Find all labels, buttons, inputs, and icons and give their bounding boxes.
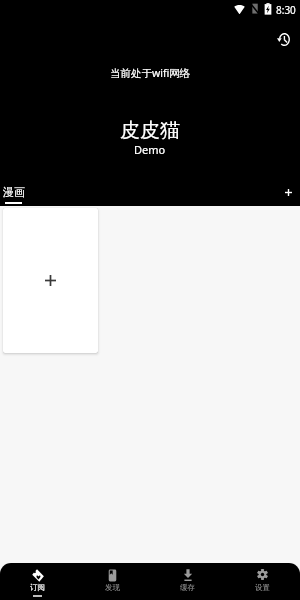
button[interactable] [3, 208, 98, 353]
staticText: 发现 [105, 583, 120, 592]
button[interactable]: 订阅 [0, 563, 75, 600]
staticText: 8:30 [276, 3, 296, 17]
button[interactable]: History [272, 28, 294, 50]
button[interactable]: 发现 [75, 563, 150, 600]
staticText: 缓存 [180, 583, 195, 592]
staticText: 皮皮猫 [120, 118, 180, 143]
staticText: 漫画 [3, 185, 25, 199]
button[interactable]: 漫画 [2, 185, 25, 204]
staticText: Demo [134, 142, 166, 157]
button[interactable]: Add [279, 183, 298, 202]
staticText: 设置 [255, 583, 270, 592]
staticText: 当前处于wifi网络 [110, 66, 191, 80]
staticText: 订阅 [30, 583, 45, 592]
button[interactable]: 缓存 [150, 563, 225, 600]
button[interactable]: 设置 [225, 563, 300, 600]
